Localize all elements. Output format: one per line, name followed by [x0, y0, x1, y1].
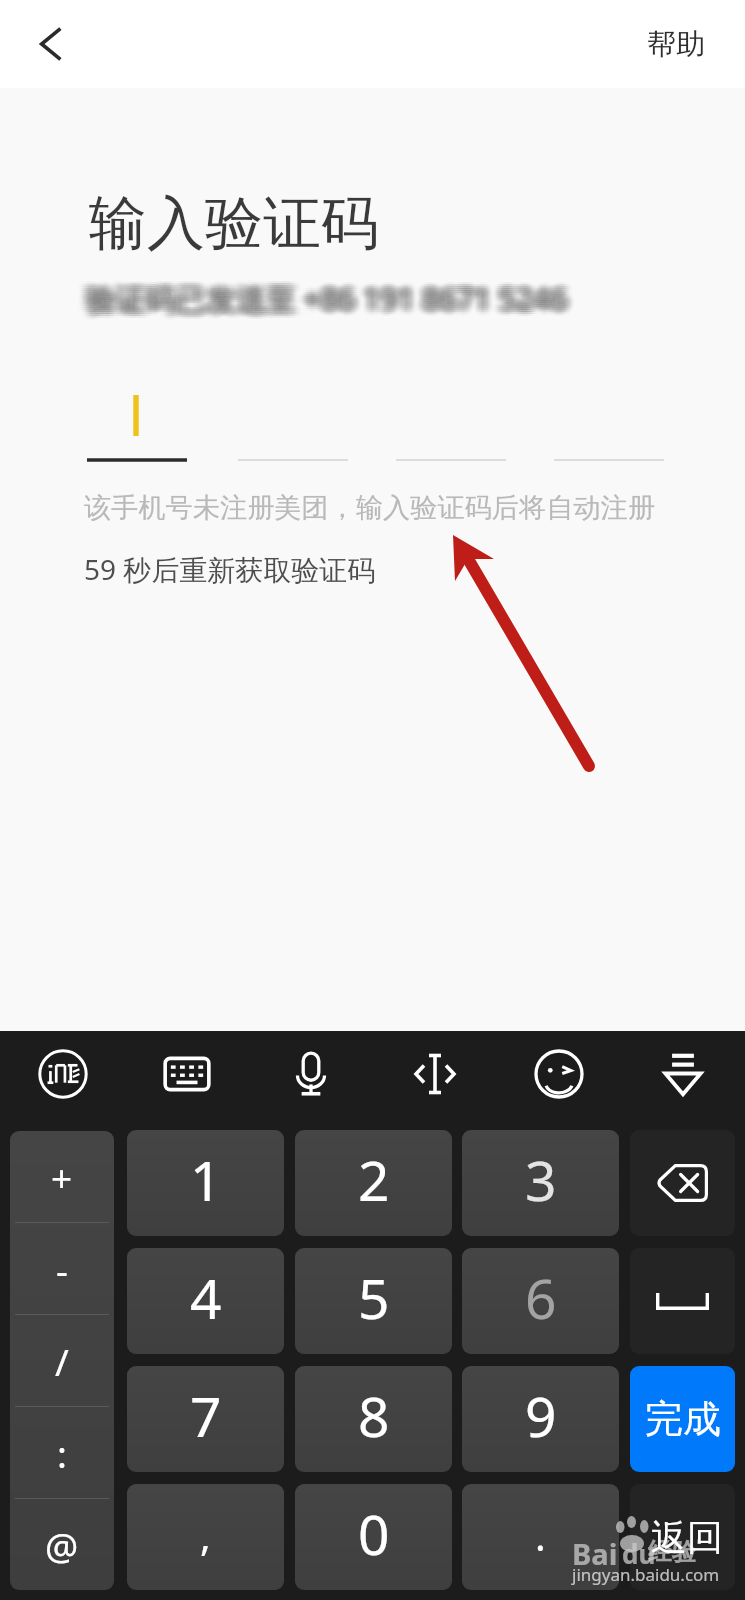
staticText: 验证码已发送至 +86 191 8671 5246 — [88, 284, 570, 325]
button[interactable]: 完成 — [630, 1366, 735, 1472]
staticText: 该手机号未注册美团，输入验证码后将自动注册 — [84, 491, 655, 525]
staticText: 验证码已发送至 +86 191 8671 5246 — [86, 282, 568, 323]
button[interactable]: : — [10, 1407, 114, 1499]
button[interactable]: 7 — [127, 1366, 284, 1472]
staticText: 验证码已发送至 +86 191 8671 5246 — [86, 274, 568, 315]
staticText: 验证码已发送至 +86 191 8671 5246 — [91, 276, 573, 317]
staticText: 经验 — [648, 1537, 696, 1567]
staticText: 3 — [525, 1142, 557, 1217]
staticText: 验证码已发送至 +86 191 8671 5246 — [94, 274, 576, 315]
staticText: 验证码已发送至 +86 191 8671 5246 — [87, 280, 569, 321]
button[interactable]: 2 — [295, 1130, 452, 1236]
staticText: 验证码已发送至 +86 191 8671 5246 — [84, 278, 566, 319]
staticText: 验证码已发送至 +86 191 8671 5246 — [83, 284, 565, 325]
button[interactable]: 8 — [295, 1366, 452, 1472]
staticText: 验证码已发送至 +86 191 8671 5246 — [92, 280, 574, 321]
staticText: 验证码已发送至 +86 191 8671 5246 — [85, 284, 567, 325]
staticText: 验证码已发送至 +86 191 8671 5246 — [82, 282, 564, 323]
button[interactable]: / — [10, 1315, 114, 1407]
button[interactable]: Move cursor — [373, 1031, 497, 1117]
staticText: 59 秒后重新获取验证码 — [84, 550, 376, 588]
staticText: 验证码已发送至 +86 191 8671 5246 — [86, 276, 568, 317]
button[interactable]: Space — [630, 1248, 735, 1354]
button[interactable]: 5 — [295, 1248, 452, 1354]
button[interactable]: 0 — [295, 1484, 452, 1590]
staticText: 验证码已发送至 +86 191 8671 5246 — [77, 276, 559, 317]
staticText: Bai — [572, 1534, 618, 1573]
staticText: 验证码已发送至 +86 191 8671 5246 — [84, 280, 566, 321]
staticText: 5 — [358, 1260, 390, 1335]
staticText: 验证码已发送至 +86 191 8671 5246 — [95, 278, 577, 319]
staticText: 验证码已发送至 +86 191 8671 5246 — [82, 280, 564, 321]
staticText: 帮助 — [647, 26, 705, 63]
staticText: 验证码已发送至 +86 191 8671 5246 — [91, 284, 573, 325]
button[interactable]: Back — [20, 13, 82, 75]
staticText: 验证码已发送至 +86 191 8671 5246 — [81, 274, 563, 315]
button[interactable]: @ — [10, 1499, 114, 1590]
staticText: 验证码已发送至 +86 191 8671 5246 — [80, 274, 562, 315]
staticText: 验证码已发送至 +86 191 8671 5246 — [82, 284, 564, 325]
staticText: 验证码已发送至 +86 191 8671 5246 — [94, 276, 576, 317]
staticText: 验证码已发送至 +86 191 8671 5246 — [81, 276, 563, 317]
staticText: 验证码已发送至 +86 191 8671 5246 — [85, 282, 567, 323]
staticText: 2 — [358, 1142, 390, 1217]
button[interactable]: Input method — [0, 1031, 125, 1117]
staticText: - — [56, 1244, 68, 1294]
button[interactable]: Voice input — [249, 1031, 373, 1117]
staticText: 验证码已发送至 +86 191 8671 5246 — [92, 276, 574, 317]
staticText: 验证码已发送至 +86 191 8671 5246 — [88, 282, 570, 323]
staticText: 验证码已发送至 +86 191 8671 5246 — [93, 278, 575, 319]
staticText: 验证码已发送至 +86 191 8671 5246 — [91, 274, 573, 315]
button[interactable]: 3 — [462, 1130, 619, 1236]
staticText: 验证码已发送至 +86 191 8671 5246 — [88, 276, 570, 317]
button[interactable]: . — [462, 1484, 619, 1590]
button[interactable]: 4 — [127, 1248, 284, 1354]
staticText: 验证码已发送至 +86 191 8671 5246 — [84, 282, 566, 323]
staticText: 验证码已发送至 +86 191 8671 5246 — [85, 276, 567, 317]
button[interactable] — [630, 1484, 735, 1590]
staticText: 验证码已发送至 +86 191 8671 5246 — [78, 282, 560, 323]
staticText: 完成 — [645, 1395, 721, 1443]
staticText: 验证码已发送至 +86 191 8671 5246 — [89, 272, 571, 313]
staticText: 验证码已发送至 +86 191 8671 5246 — [92, 284, 574, 325]
staticText: 验证码已发送至 +86 191 8671 5246 — [95, 280, 577, 321]
staticText: 验证码已发送至 +86 191 8671 5246 — [90, 272, 572, 313]
button[interactable]: - — [10, 1223, 114, 1315]
button[interactable]: Emoji — [497, 1031, 621, 1117]
staticText: 验证码已发送至 +86 191 8671 5246 — [92, 278, 574, 319]
staticText: jingyan.baidu.com — [572, 1563, 720, 1586]
staticText: 验证码已发送至 +86 191 8671 5246 — [93, 276, 575, 317]
button[interactable]: Keyboard layout — [125, 1031, 249, 1117]
button[interactable]: 9 — [462, 1366, 619, 1472]
button[interactable]: 6 — [462, 1248, 619, 1354]
button[interactable]: 帮助 — [647, 26, 705, 63]
staticText: 验证码已发送至 +86 191 8671 5246 — [81, 278, 563, 319]
button[interactable]: + — [10, 1131, 114, 1223]
staticText: 验证码已发送至 +86 191 8671 5246 — [83, 278, 565, 319]
staticText: 验证码已发送至 +86 191 8671 5246 — [86, 272, 568, 313]
staticText: 验证码已发送至 +86 191 8671 5246 — [90, 284, 572, 325]
staticText: 验证码已发送至 +86 191 8671 5246 — [89, 274, 571, 315]
staticText: 验证码已发送至 +86 191 8671 5246 — [88, 274, 570, 315]
staticText: 验证码已发送至 +86 191 8671 5246 — [90, 278, 572, 319]
button[interactable]: , — [127, 1484, 284, 1590]
staticText: 验证码已发送至 +86 191 8671 5246 — [87, 272, 569, 313]
staticText: 验证码已发送至 +86 191 8671 5246 — [79, 278, 561, 319]
button[interactable]: Hide keyboard — [621, 1031, 745, 1117]
staticText: 验证码已发送至 +86 191 8671 5246 — [78, 274, 560, 315]
staticText: 验证码已发送至 +86 191 8671 5246 — [77, 278, 559, 319]
staticText: 验证码已发送至 +86 191 8671 5246 — [83, 276, 565, 317]
staticText: 验证码已发送至 +86 191 8671 5246 — [83, 280, 565, 321]
staticText: 验证码已发送至 +86 191 8671 5246 — [89, 284, 571, 325]
button[interactable]: 1 — [127, 1130, 284, 1236]
staticText: 验证码已发送至 +86 191 8671 5246 — [87, 276, 569, 317]
staticText: 验证码已发送至 +86 191 8671 5246 — [76, 278, 558, 319]
staticText: 验证码已发送至 +86 191 8671 5246 — [93, 282, 575, 323]
staticText: 7 — [190, 1378, 222, 1453]
staticText: 验证码已发送至 +86 191 8671 5246 — [85, 278, 567, 319]
staticText: . — [535, 1508, 546, 1562]
staticText: 6 — [525, 1260, 557, 1335]
staticText: 验证码已发送至 +86 191 8671 5246 — [93, 280, 575, 321]
button[interactable]: Backspace — [630, 1130, 735, 1236]
staticText: du — [622, 1536, 656, 1571]
